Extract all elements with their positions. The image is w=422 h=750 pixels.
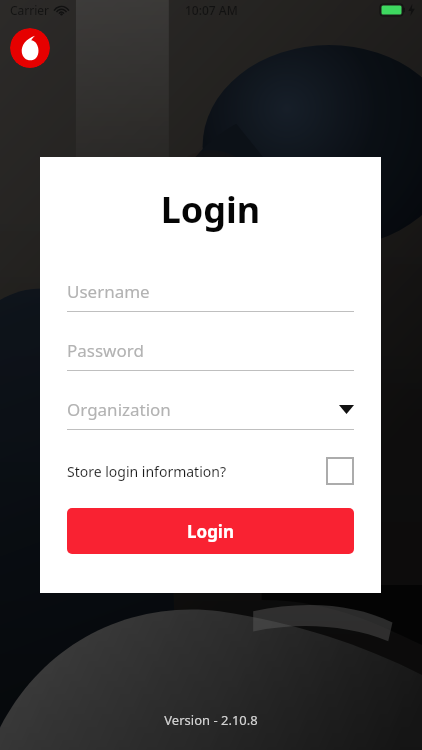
staticText: Login	[187, 520, 235, 543]
staticText: Password	[67, 339, 144, 362]
staticText: Carrier	[10, 2, 50, 18]
button[interactable]: Password	[67, 339, 354, 371]
button[interactable]: Vodafone logo	[10, 28, 50, 68]
staticText: Login	[40, 185, 381, 234]
staticText: Username	[67, 280, 150, 303]
button[interactable]: Username	[67, 280, 354, 312]
staticText: Version - 2.10.8	[164, 711, 258, 729]
button[interactable]: Login	[67, 508, 354, 554]
staticText: Organization	[67, 398, 171, 421]
staticText: 10:07 AM	[185, 2, 238, 18]
button[interactable]: Store login information?	[67, 452, 354, 490]
staticText: Store login information?	[67, 462, 226, 481]
button[interactable]: Organization	[67, 398, 354, 430]
